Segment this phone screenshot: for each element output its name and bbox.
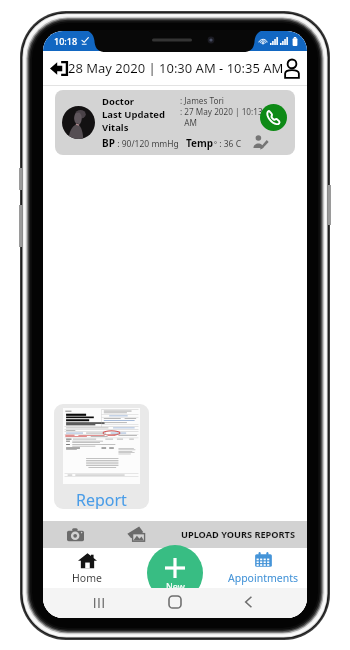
staticText: Last Updated [102,108,166,121]
button[interactable]: Edit patient [252,134,268,150]
button[interactable]: Report [54,404,149,509]
button[interactable]: Home [43,548,131,588]
staticText: : 36 C [217,138,242,150]
staticText: ° [214,140,217,150]
staticText: : James Tori [180,95,224,106]
button[interactable]: Back [49,59,68,78]
staticText: New [166,580,185,588]
staticText: BP [102,136,115,150]
staticText: Vitals [102,121,129,134]
staticText: Appointments [228,571,299,585]
staticText: Home [72,571,102,585]
staticText: UPLOAD YOURS REPORTS [181,528,295,541]
button[interactable]: Appointments [219,548,307,588]
button[interactable]: Call doctor [260,104,287,131]
button[interactable]: Recents [89,593,109,613]
staticText: 28 May 2020 | 10:30 AM - 10:35 AM [68,59,284,77]
button[interactable]: Pick from gallery [127,525,146,543]
button[interactable]: New [147,558,203,588]
button[interactable]: Take photo [67,528,84,542]
staticText: AM [180,117,197,128]
button[interactable]: Profile [284,57,300,79]
staticText: Report [76,489,127,509]
staticText: 10:18 [54,35,78,47]
button[interactable]: Back [238,592,258,612]
button[interactable]: Home [165,592,185,612]
staticText: Temp [186,136,214,150]
staticText: Doctor [102,95,135,108]
staticText: : 27 May 2020 | 10:13 [180,106,263,117]
staticText: : 90/120 mmHg [115,138,179,150]
button[interactable]: Doctor [55,90,295,155]
